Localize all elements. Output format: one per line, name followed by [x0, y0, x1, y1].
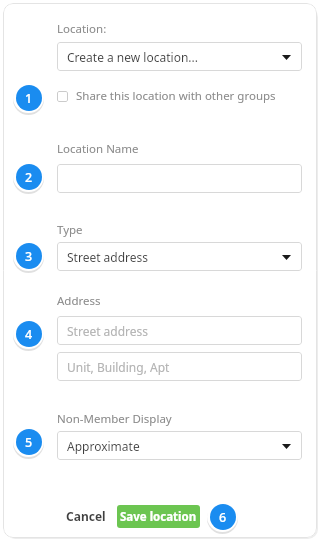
- staticText: Street address: [67, 323, 149, 339]
- button[interactable]: Unit, Building, Apt: [57, 352, 302, 381]
- staticText: Location Name: [57, 141, 139, 157]
- staticText: Type: [57, 222, 83, 238]
- button[interactable]: Location Name: [57, 164, 302, 193]
- button[interactable]: Location selector: [57, 42, 302, 71]
- staticText: 6: [219, 509, 227, 526]
- staticText: 4: [25, 326, 33, 343]
- button[interactable]: Save location: [117, 505, 200, 528]
- staticText: Street address: [67, 249, 149, 265]
- button[interactable]: Share this location with other groups: [57, 86, 276, 106]
- staticText: Location:: [57, 21, 107, 37]
- staticText: Save location: [120, 509, 197, 525]
- staticText: 1: [25, 90, 33, 107]
- staticText: Cancel: [66, 508, 106, 524]
- button[interactable]: Cancel: [64, 506, 107, 526]
- staticText: Address: [57, 293, 101, 309]
- button[interactable]: Type selector: [57, 242, 302, 271]
- staticText: Approximate: [67, 438, 140, 454]
- button[interactable]: Non-Member Display selector: [57, 431, 302, 460]
- staticText: Share this location with other groups: [76, 88, 276, 104]
- staticText: 3: [25, 248, 33, 265]
- button[interactable]: Street address: [57, 316, 302, 345]
- staticText: Non-Member Display: [57, 411, 172, 427]
- staticText: 2: [25, 169, 33, 186]
- staticText: Unit, Building, Apt: [67, 359, 170, 375]
- staticText: 5: [25, 434, 33, 451]
- staticText: Create a new location...: [67, 49, 198, 65]
